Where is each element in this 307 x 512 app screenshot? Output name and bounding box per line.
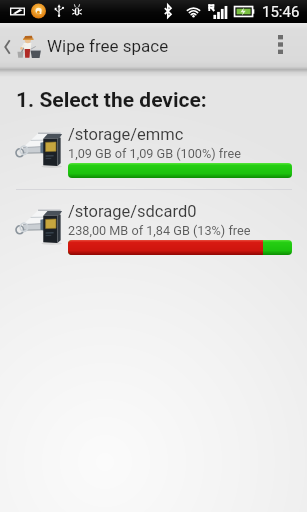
staticText: /storage/emmc xyxy=(68,125,184,144)
button[interactable]: Navigate up xyxy=(2,23,44,70)
button[interactable]: More options xyxy=(275,23,307,70)
button[interactable]: /storage/sdcard0 xyxy=(0,200,307,272)
staticText: 1. Select the device: xyxy=(16,88,207,113)
staticText: Wipe free space xyxy=(47,36,169,56)
staticText: 1,09 GB of 1,09 GB (100%) free xyxy=(68,146,241,161)
button[interactable]: /storage/emmc xyxy=(0,123,307,195)
staticText: 15:46 xyxy=(262,3,300,21)
staticText: /storage/sdcard0 xyxy=(68,202,197,221)
staticText: 238,00 MB of 1,84 GB (13%) free xyxy=(68,223,251,238)
